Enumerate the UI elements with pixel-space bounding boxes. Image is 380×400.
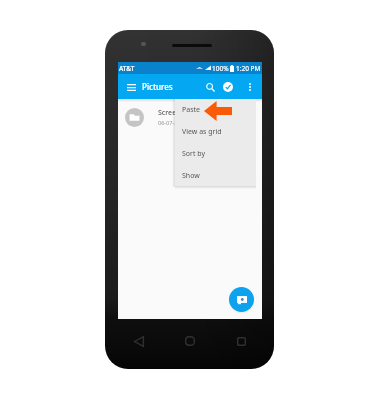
button[interactable]: Recents <box>229 329 253 353</box>
button[interactable]: Home <box>178 329 202 353</box>
button[interactable]: New folder <box>229 287 254 312</box>
button[interactable]: More options <box>241 78 259 96</box>
staticText: 100% <box>212 64 229 73</box>
staticText: AT&T <box>119 64 135 73</box>
button[interactable]: Select all <box>219 78 237 96</box>
button[interactable]: Sort by <box>175 143 256 165</box>
button[interactable]: Show <box>175 165 256 186</box>
button[interactable]: Navigation menu <box>122 78 140 96</box>
button[interactable]: Back <box>127 329 151 353</box>
staticText: 1:20 PM <box>236 64 261 73</box>
staticText: Pictures <box>142 81 173 92</box>
staticText: Show <box>182 171 200 181</box>
staticText: View as grid <box>182 127 222 137</box>
staticText: Sort by <box>182 149 206 159</box>
button[interactable]: Screenshots <box>118 99 262 135</box>
button[interactable]: View as grid <box>175 121 256 143</box>
button[interactable]: Paste <box>175 99 256 121</box>
staticText: 06-07-2016 <box>158 119 187 126</box>
staticText: Paste <box>182 105 200 115</box>
button[interactable]: Search <box>201 78 219 96</box>
staticText: Screenshots <box>158 108 199 118</box>
